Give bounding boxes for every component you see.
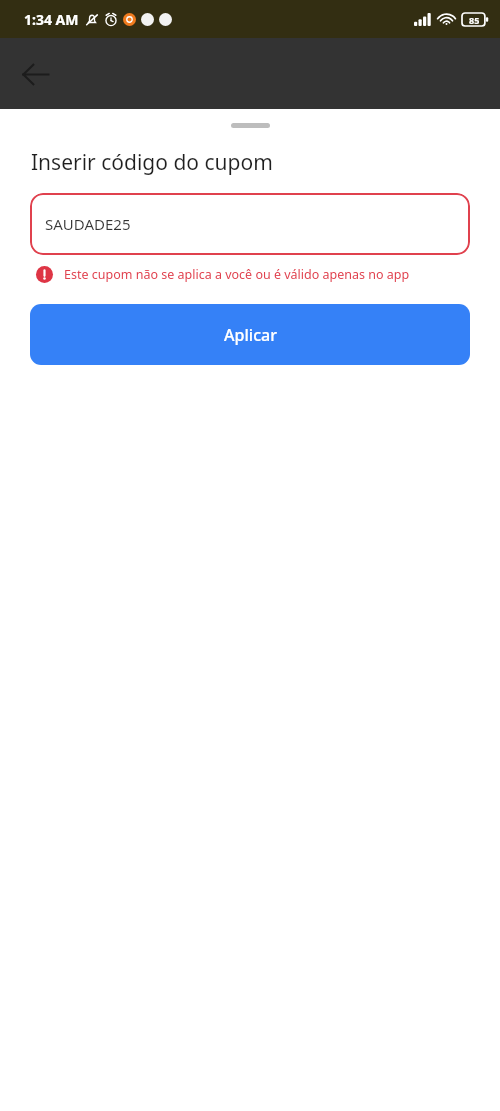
button[interactable]: Back xyxy=(12,51,58,97)
staticText: SAUDADE25 xyxy=(45,214,131,234)
staticText: 85 xyxy=(469,14,480,26)
button[interactable]: Aplicar xyxy=(30,304,470,365)
staticText: Inserir código do cupom xyxy=(31,148,273,177)
button[interactable]: SAUDADE25 xyxy=(30,193,470,255)
staticText: Aplicar xyxy=(224,324,277,346)
staticText: Este cupom não se aplica a você ou é vál… xyxy=(64,266,410,283)
staticText: 1:34 AM xyxy=(24,10,79,29)
